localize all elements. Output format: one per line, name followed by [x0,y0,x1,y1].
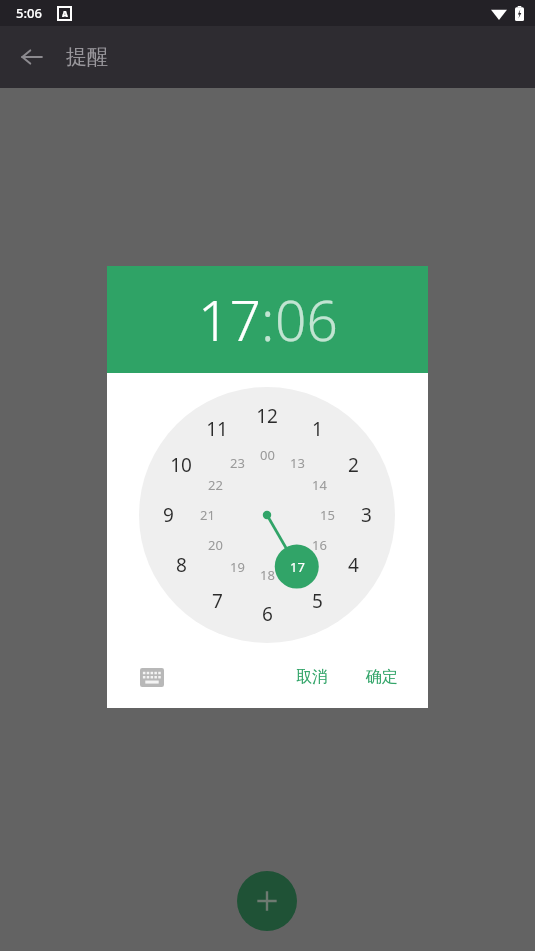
staticText: 1 [312,416,323,442]
staticText: 5:06 [16,4,42,22]
staticText: 9 [163,502,174,528]
staticText: : [261,282,275,357]
button[interactable]: Select hour [198,282,261,357]
button[interactable]: 13 [277,450,317,476]
button[interactable]: 15 [307,502,347,528]
staticText: 5 [312,588,323,614]
staticText: 00 [260,446,275,464]
staticText: 4 [348,552,359,578]
button[interactable]: 取消 [288,661,336,693]
button[interactable]: 2 [333,452,373,478]
button[interactable]: 确定 [358,661,406,693]
staticText: 06 [275,282,338,357]
button[interactable]: 14 [299,472,339,498]
staticText: 2 [348,452,359,478]
button[interactable]: 19 [217,554,257,580]
staticText: 19 [230,558,245,576]
button[interactable]: 10 [161,452,201,478]
button[interactable]: 4 [333,552,373,578]
staticText: 21 [200,506,215,524]
staticText: 10 [170,452,192,478]
staticText: 17 [290,558,305,576]
button[interactable]: 8 [161,552,201,578]
staticText: 7 [212,588,223,614]
staticText: 17 [198,282,261,357]
button[interactable]: 12 [247,403,287,429]
button[interactable]: 17 [277,554,317,580]
staticText: 12 [256,403,278,429]
button[interactable]: 11 [197,416,237,442]
button[interactable]: Switch to keyboard input [133,658,171,696]
staticText: 14 [312,476,327,494]
staticText: 22 [208,476,223,494]
staticText: 20 [208,536,223,554]
button[interactable]: 00 [247,442,287,468]
button[interactable]: 5 [297,588,337,614]
staticText: 11 [206,416,228,442]
button[interactable]: Add reminder [237,871,297,931]
button[interactable]: Select minute [275,282,338,357]
button[interactable]: 6 [247,601,287,627]
button[interactable]: 3 [346,502,386,528]
button[interactable]: 20 [195,532,235,558]
staticText: 确定 [366,667,398,687]
staticText: 6 [262,601,273,627]
button[interactable]: 7 [197,588,237,614]
button[interactable]: 18 [247,562,287,588]
button[interactable]: 22 [195,472,235,498]
staticText: 3 [361,502,372,528]
staticText: 15 [320,506,335,524]
button[interactable]: 21 [187,502,227,528]
staticText: 23 [230,454,245,472]
staticText: 18 [260,566,275,584]
staticText: 13 [290,454,305,472]
staticText: A [62,8,68,19]
staticText: 16 [312,536,327,554]
button[interactable]: Back [10,35,54,79]
staticText: 取消 [296,667,328,687]
staticText: 提醒 [66,44,108,70]
button[interactable]: 9 [148,502,188,528]
button[interactable]: 1 [297,416,337,442]
button[interactable]: 16 [299,532,339,558]
staticText: 8 [176,552,187,578]
button[interactable]: 23 [217,450,257,476]
